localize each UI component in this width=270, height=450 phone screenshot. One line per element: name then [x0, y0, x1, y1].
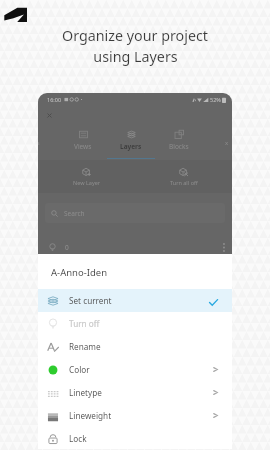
staticText: A-Anno-Iden: [51, 266, 108, 279]
staticText: Lock: [69, 433, 87, 444]
button[interactable]: Set current: [38, 289, 232, 312]
button[interactable]: Blocks: [155, 127, 203, 159]
button[interactable]: Lineweight: [38, 404, 232, 427]
button[interactable]: Lock: [38, 427, 232, 449]
button[interactable]: New Layer: [38, 160, 135, 193]
staticText: x: [225, 139, 229, 147]
staticText: Set current: [69, 295, 112, 306]
button[interactable]: Views: [59, 127, 107, 159]
staticText: Color: [69, 364, 90, 375]
button[interactable]: App logo: [0, 0, 32, 26]
button[interactable]: Rename: [38, 335, 232, 358]
staticText: ers: [38, 139, 40, 147]
button[interactable]: Linetype: [38, 381, 232, 404]
staticText: Linetype: [69, 387, 102, 398]
button[interactable]: Color: [38, 358, 232, 381]
button[interactable]: Turn all off: [135, 160, 232, 193]
staticText: Search: [64, 209, 85, 218]
staticText: Turn off: [69, 318, 100, 329]
staticText: Rename: [69, 341, 101, 352]
staticText: Organize your project: [62, 26, 208, 45]
button[interactable]: Layers: [107, 127, 155, 159]
button[interactable]: Turn off: [38, 312, 232, 335]
staticText: Lineweight: [69, 410, 112, 421]
staticText: Turn all off: [170, 179, 198, 186]
button[interactable]: Close: [45, 111, 54, 120]
staticText: Blocks: [169, 142, 189, 151]
staticText: 52%: [210, 96, 221, 103]
staticText: 16:00: [47, 96, 62, 103]
staticText: Layers: [120, 142, 142, 151]
staticText: Views: [74, 142, 92, 151]
staticText: 0: [65, 243, 69, 252]
staticText: New Layer: [73, 179, 101, 186]
staticText: using Layers: [93, 47, 178, 66]
